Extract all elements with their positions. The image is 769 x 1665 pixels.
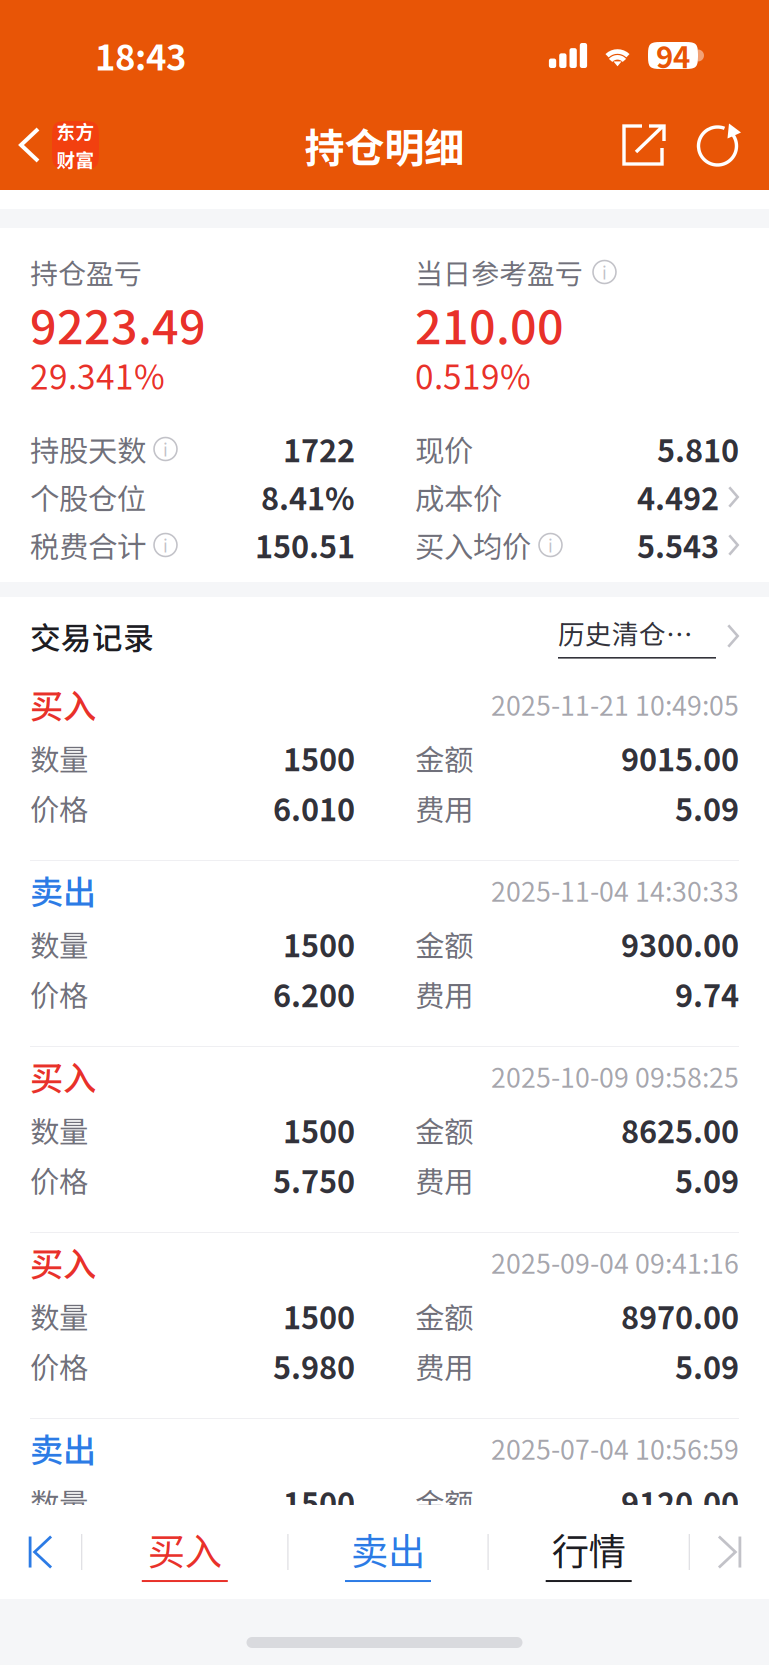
button[interactable]: 下一只	[690, 1505, 769, 1599]
staticText: 费用	[415, 973, 473, 1015]
staticText: 2025-07-04 10:56:59	[491, 1429, 739, 1467]
staticText: 2025-11-04 14:30:33	[491, 871, 739, 909]
button[interactable]: 买入	[82, 1505, 287, 1599]
staticText: 个股仓位	[30, 476, 146, 518]
staticText: 成本价	[415, 476, 502, 518]
staticText: 8625.00	[621, 1108, 739, 1152]
staticText: 8970.00	[621, 1294, 739, 1338]
staticText: 29.341%	[30, 351, 165, 399]
staticText: 1500	[283, 922, 355, 966]
staticText: 2025-10-09 09:58:25	[491, 1057, 739, 1095]
staticText: i	[163, 532, 168, 558]
staticText: 1500	[283, 1480, 355, 1524]
staticText: 1500	[283, 1108, 355, 1152]
staticText: 金额	[415, 1295, 473, 1337]
staticText: 0.519%	[415, 351, 531, 399]
button[interactable]: 历史清仓记录	[558, 597, 739, 675]
staticText: 行情	[552, 1522, 626, 1576]
staticText: 5.543	[637, 523, 719, 567]
staticText: 1500	[283, 1294, 355, 1338]
staticText: 5.810	[657, 427, 739, 471]
staticText: 买入	[148, 1522, 222, 1576]
staticText: 5.09	[675, 786, 739, 830]
staticText: i	[548, 532, 553, 558]
staticText: 5.750	[273, 1158, 355, 1202]
staticText: 当日参考盈亏	[415, 252, 583, 292]
staticText: 费用	[415, 1345, 473, 1387]
staticText: 持仓明细	[304, 116, 464, 174]
staticText: 税费合计	[30, 524, 146, 566]
staticText: 东方	[56, 117, 94, 144]
staticText: 卖出	[30, 1424, 96, 1472]
staticText: 9300.00	[621, 922, 739, 966]
staticText: 买入	[30, 680, 96, 728]
staticText: 价格	[30, 1345, 88, 1387]
staticText: 2025-11-21 10:49:05	[491, 685, 739, 723]
staticText: 2025-09-04 09:41:16	[491, 1243, 739, 1281]
staticText: 价格	[30, 787, 88, 829]
staticText: 1722	[283, 427, 355, 471]
staticText: 现价	[415, 428, 473, 470]
staticText: 5.09	[675, 1158, 739, 1202]
staticText: 历史清仓记录	[558, 613, 716, 652]
staticText: 数量	[30, 737, 88, 779]
staticText: 金额	[415, 1481, 473, 1523]
button[interactable]: 返回 东方财富	[0, 100, 109, 190]
staticText: 金额	[415, 737, 473, 779]
staticText: 卖出	[30, 866, 96, 914]
staticText: 210.00	[415, 290, 564, 358]
staticText: 18:43	[95, 30, 186, 81]
staticText: 费用	[415, 1159, 473, 1201]
staticText: 持股天数	[30, 428, 146, 470]
staticText: 9.55	[675, 1530, 739, 1574]
staticText: 金额	[415, 1109, 473, 1151]
staticText: 买入	[30, 1238, 96, 1286]
staticText: 4.492	[637, 475, 719, 519]
staticText: 价格	[30, 973, 88, 1015]
staticText: 9223.49	[30, 290, 206, 358]
staticText: 价格	[30, 1531, 88, 1573]
staticText: 费用	[415, 787, 473, 829]
staticText: 数量	[30, 1481, 88, 1523]
button[interactable]: 刷新	[681, 100, 757, 190]
staticText: 9015.00	[621, 736, 739, 780]
staticText: 财富	[56, 145, 94, 172]
staticText: 9120.00	[621, 1480, 739, 1524]
staticText: 卖出	[351, 1522, 425, 1576]
staticText: i	[602, 259, 607, 285]
button[interactable]: 行情	[489, 1505, 689, 1599]
staticText: 8.41%	[261, 475, 355, 519]
staticText: i	[163, 436, 168, 462]
staticText: 买入	[30, 1052, 96, 1100]
button[interactable]: 成本价	[415, 473, 739, 521]
staticText: 买入均价	[415, 524, 531, 566]
staticText: 9.74	[675, 972, 739, 1016]
staticText: 94	[656, 34, 690, 77]
staticText: 数量	[30, 923, 88, 965]
staticText: 5.980	[273, 1344, 355, 1388]
staticText: 150.51	[255, 523, 355, 567]
staticText: 数量	[30, 1295, 88, 1337]
staticText: 5.09	[675, 1344, 739, 1388]
button[interactable]: 分享	[607, 100, 681, 190]
button[interactable]: 卖出	[288, 1505, 487, 1599]
staticText: 6.010	[273, 786, 355, 830]
staticText: 交易记录	[30, 614, 154, 658]
button[interactable]: 上一只	[0, 1505, 81, 1599]
staticText: 6.080	[273, 1530, 355, 1574]
staticText: 持仓盈亏	[30, 252, 142, 292]
staticText: 1500	[283, 736, 355, 780]
staticText: 费用	[415, 1531, 473, 1573]
staticText: 数量	[30, 1109, 88, 1151]
staticText: 金额	[415, 923, 473, 965]
button[interactable]: 买入均价	[415, 521, 739, 569]
staticText: 6.200	[273, 972, 355, 1016]
staticText: 价格	[30, 1159, 88, 1201]
